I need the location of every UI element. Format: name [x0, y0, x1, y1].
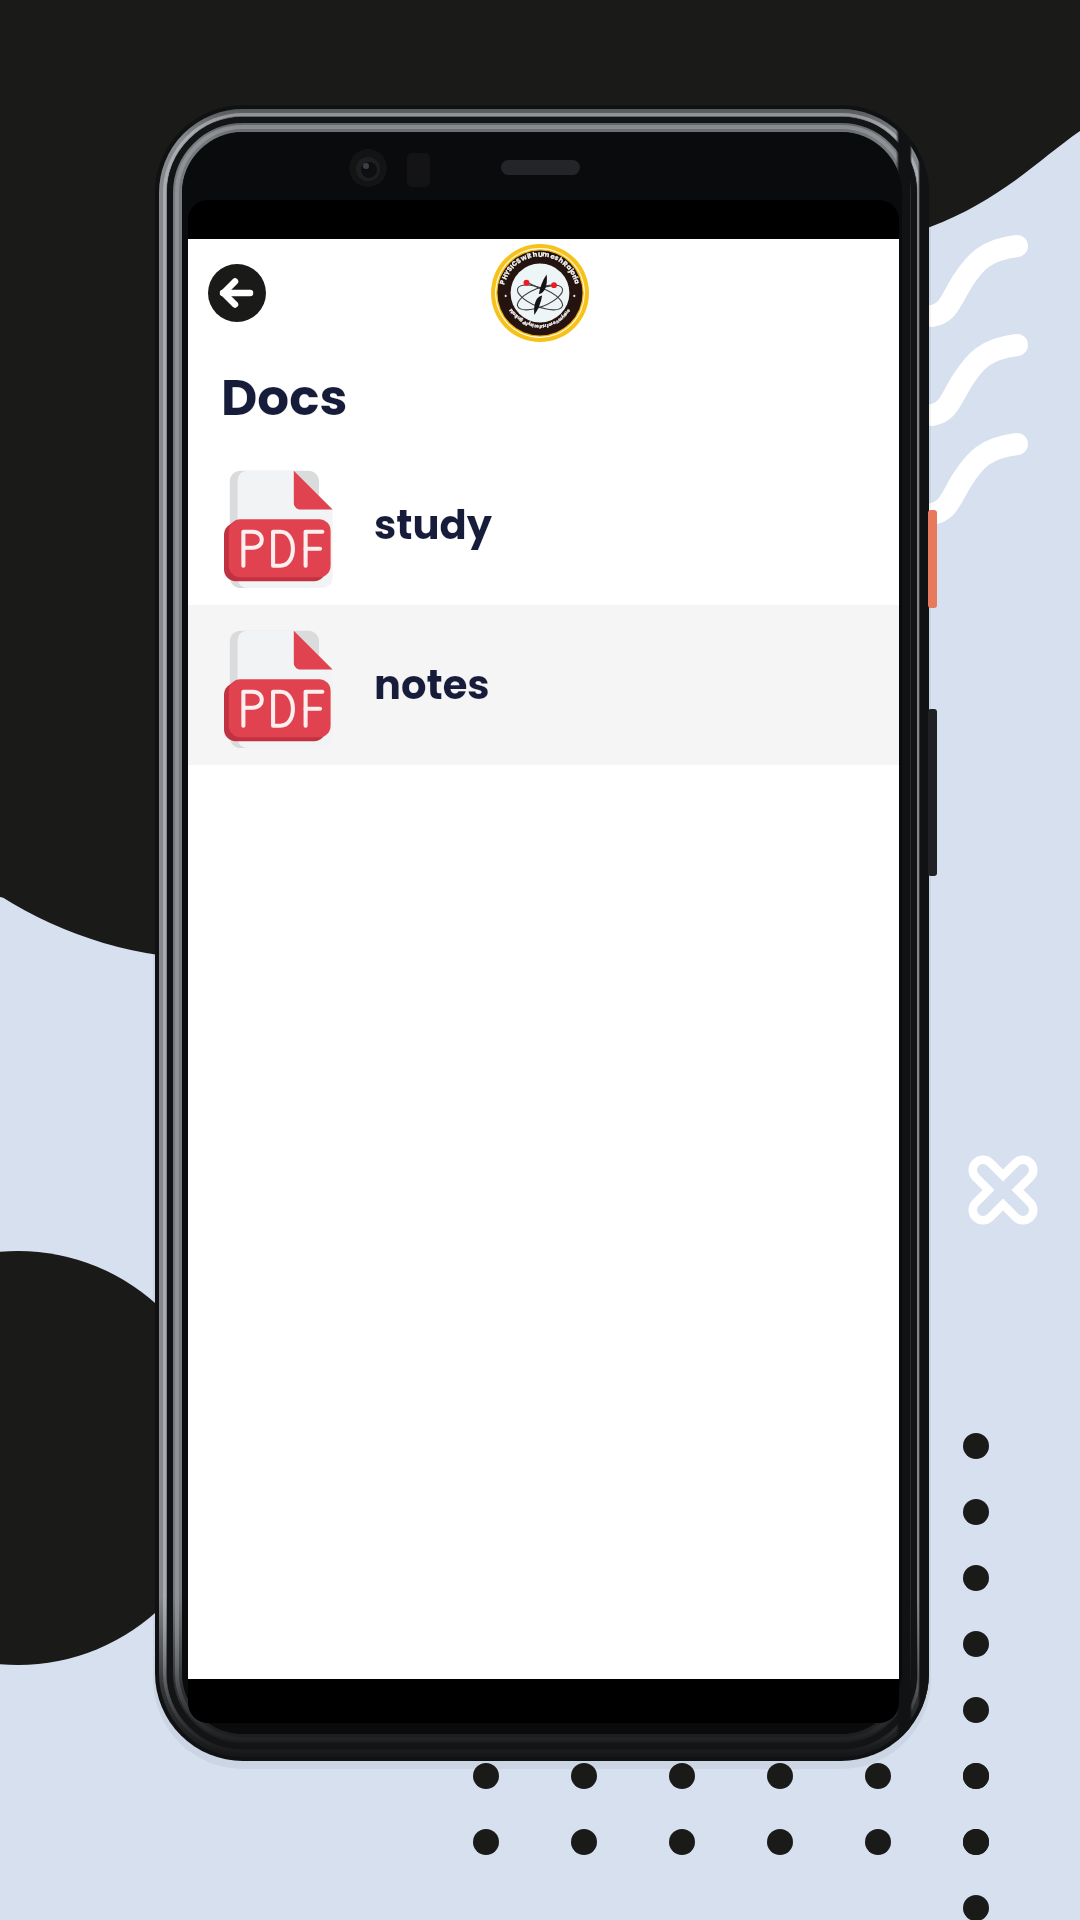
button[interactable]: study: [188, 445, 899, 605]
button[interactable]: notes: [188, 605, 899, 765]
staticText: notes: [374, 657, 490, 713]
staticText: Docs: [221, 363, 348, 433]
button[interactable]: Back: [208, 264, 266, 322]
staticText: study: [374, 497, 492, 553]
